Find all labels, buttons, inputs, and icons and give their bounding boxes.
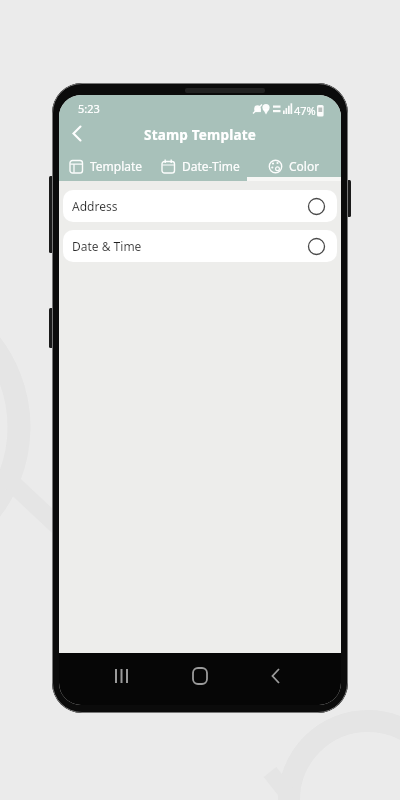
button[interactable]: Address [63, 190, 337, 222]
staticText: Address [72, 198, 118, 214]
button[interactable]: Color [247, 150, 341, 181]
button[interactable]: Date & Time [63, 230, 337, 262]
button[interactable]: Date-Time [153, 150, 247, 181]
staticText: Color [289, 158, 320, 174]
staticText: Stamp Template [144, 126, 257, 144]
button[interactable] [153, 653, 247, 705]
button[interactable]: Template [59, 150, 153, 181]
staticText: Date & Time [72, 238, 142, 254]
staticText: Date-Time [182, 158, 240, 174]
button[interactable] [63, 121, 93, 150]
staticText: Template [90, 158, 143, 174]
button[interactable] [247, 653, 341, 705]
staticText: 47% [294, 103, 316, 118]
button[interactable] [59, 653, 153, 705]
staticText: 5:23 [78, 101, 100, 116]
